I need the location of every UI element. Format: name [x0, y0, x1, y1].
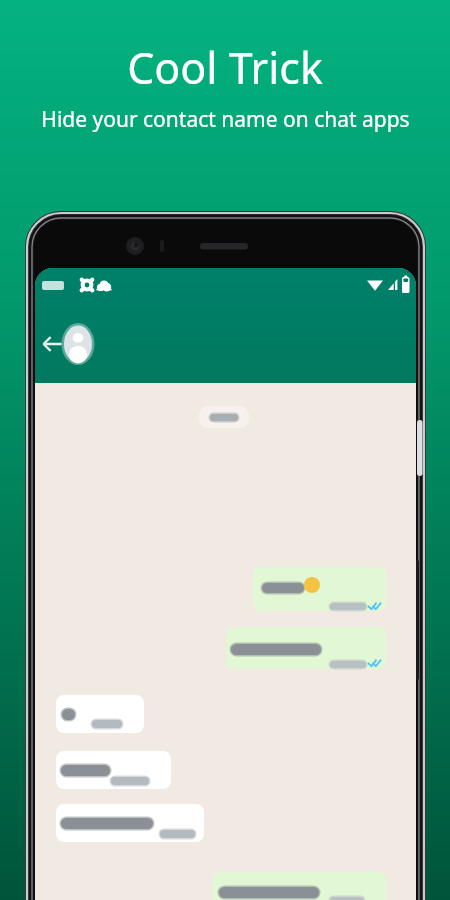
staticText: Hide your contact name on chat apps — [41, 105, 410, 134]
staticText: Cool Trick — [127, 38, 323, 97]
